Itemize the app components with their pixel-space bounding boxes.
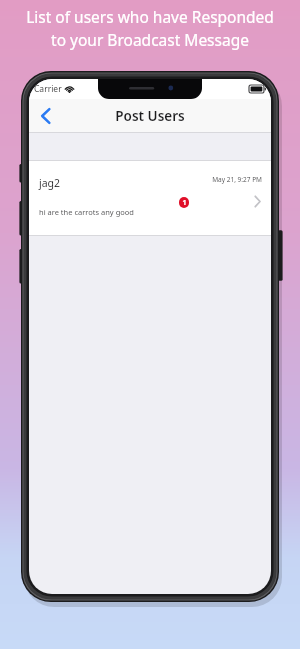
staticText: 1: [182, 198, 187, 208]
staticText: May 21, 9:27 PM: [212, 175, 262, 184]
staticText: Post Users: [115, 107, 185, 125]
button[interactable]: jag2: [29, 161, 271, 235]
staticText: jag2: [39, 176, 61, 190]
staticText: Carrier: [34, 83, 62, 95]
staticText: hi are the carrots any good: [39, 207, 134, 217]
staticText: List of users who have Responded: [26, 6, 274, 27]
button[interactable]: Back: [29, 99, 63, 133]
staticText: to your Broadcast Message: [51, 29, 249, 50]
